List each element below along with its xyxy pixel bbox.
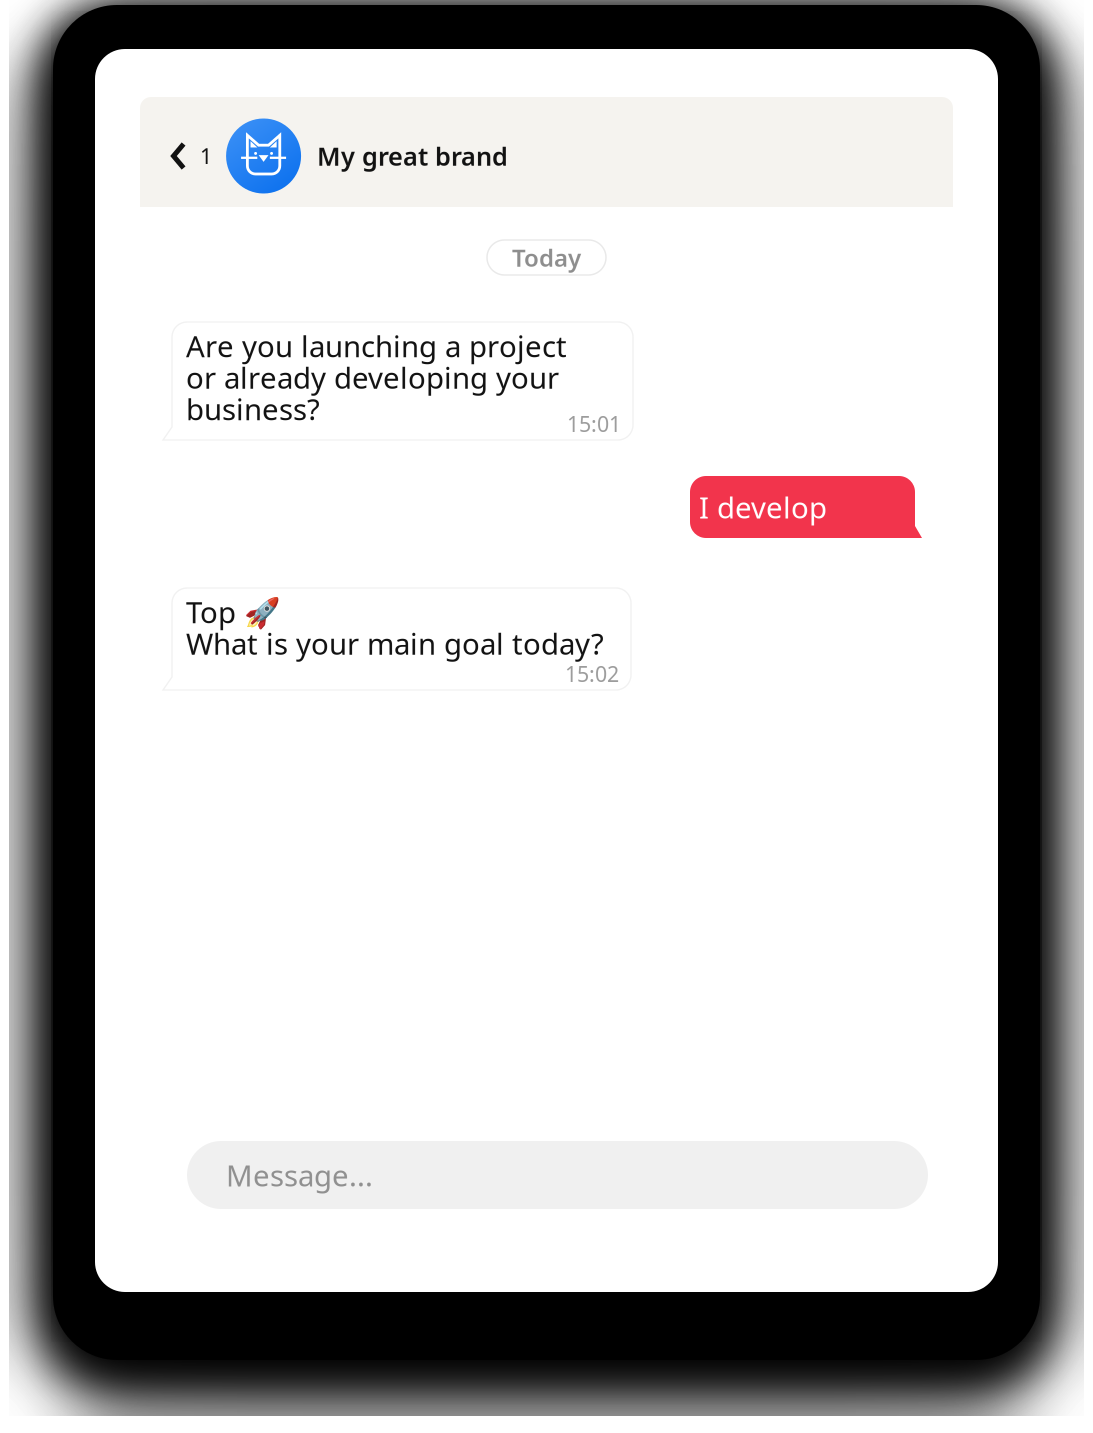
button[interactable]: Top 🚀 — [163, 588, 631, 690]
button[interactable]: My great brand — [226, 118, 508, 193]
staticText: My great brand — [317, 139, 508, 173]
staticText: 15:01 — [567, 410, 621, 438]
button[interactable]: Message... — [187, 1141, 928, 1209]
staticText: Today — [512, 242, 581, 273]
staticText: 15:02 — [565, 660, 619, 688]
staticText: Are you launching a project — [186, 326, 567, 365]
button[interactable]: I develop — [690, 476, 922, 538]
staticText: 1 — [200, 142, 212, 170]
staticText: or already developing your — [186, 358, 559, 397]
staticText: Message... — [226, 1155, 373, 1194]
staticText: I develop — [699, 487, 827, 526]
button[interactable]: Are you launching a project — [163, 322, 633, 440]
staticText: business? — [186, 389, 320, 428]
staticText: What is your main goal today? — [186, 624, 604, 663]
staticText: Top 🚀 — [186, 592, 281, 631]
button[interactable]: Back — [140, 101, 226, 211]
